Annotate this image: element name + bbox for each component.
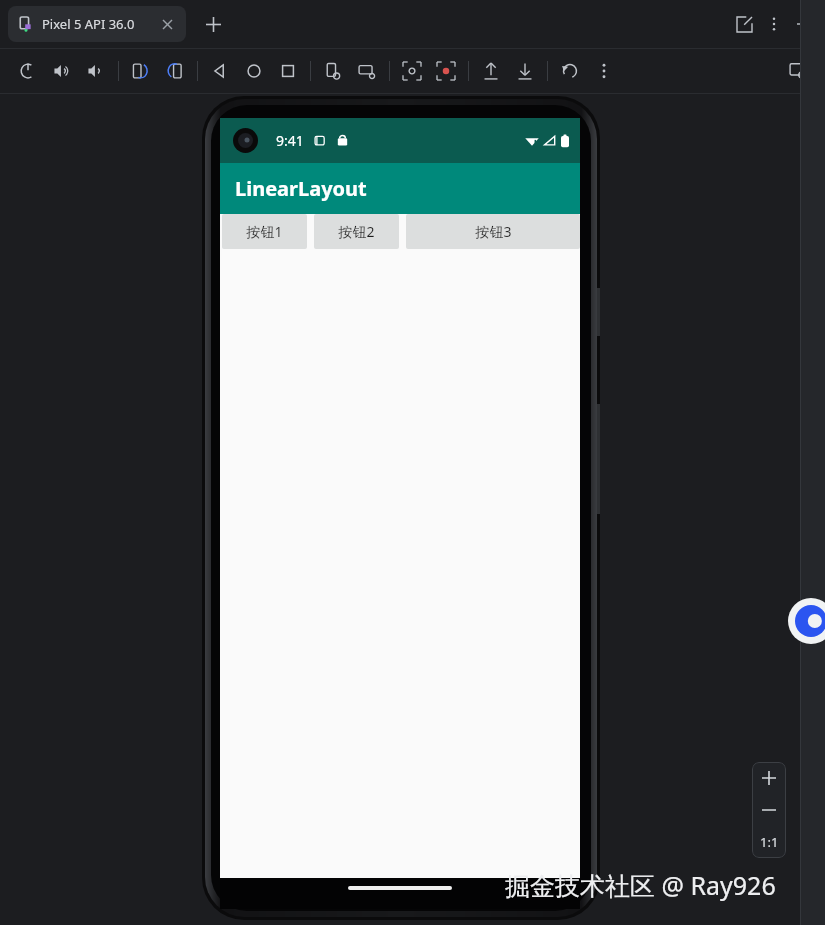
staticText: 按钮1 — [246, 222, 283, 241]
staticText: Pixel 5 API 36.0 — [42, 15, 135, 33]
button[interactable]: Volume up — [45, 54, 79, 88]
button[interactable]: Rotate left — [124, 54, 158, 88]
button[interactable]: Record screen — [429, 54, 463, 88]
button[interactable]: Overview — [271, 54, 305, 88]
staticText: 掘金技术社区 @ Ray926 — [505, 868, 776, 902]
button[interactable]: Keyboard input — [350, 54, 384, 88]
button[interactable]: Download — [508, 54, 542, 88]
button[interactable]: Upload — [474, 54, 508, 88]
button[interactable]: 按钮3 — [406, 214, 580, 249]
button[interactable]: Inspect — [781, 54, 815, 88]
button[interactable]: New tab — [200, 11, 226, 37]
staticText: LinearLayout — [235, 175, 367, 202]
button[interactable]: Home gesture bar — [348, 886, 452, 890]
button[interactable]: Close tab — [158, 15, 176, 33]
button[interactable]: Pixel 5 API 36.0 — [8, 6, 186, 42]
button[interactable]: More options — [759, 9, 789, 39]
button[interactable]: Screenshot — [395, 54, 429, 88]
button[interactable]: Back — [203, 54, 237, 88]
button[interactable]: History — [553, 54, 587, 88]
button[interactable]: Rotate right — [158, 54, 192, 88]
staticText: 按钮2 — [338, 222, 375, 241]
staticText: 9:41 — [276, 131, 304, 150]
button[interactable]: Home — [237, 54, 271, 88]
button[interactable]: Zoom in — [752, 762, 786, 794]
button[interactable]: 按钮1 — [222, 214, 307, 249]
button[interactable]: Power — [11, 54, 45, 88]
button[interactable]: Open in separate window — [729, 9, 759, 39]
button[interactable]: 按钮2 — [314, 214, 399, 249]
button[interactable]: Minimize — [789, 9, 819, 39]
button[interactable]: Assistant — [788, 598, 825, 644]
button[interactable]: 1:1 — [752, 826, 786, 858]
button[interactable]: Device settings — [316, 54, 350, 88]
staticText: 1:1 — [760, 833, 779, 851]
button[interactable]: More — [587, 54, 621, 88]
button[interactable]: Zoom out — [752, 794, 786, 826]
staticText: 按钮3 — [475, 222, 512, 241]
button[interactable]: Volume down — [79, 54, 113, 88]
